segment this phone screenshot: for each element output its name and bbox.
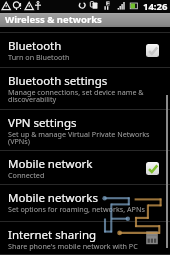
button[interactable]: Bluetooth — [0, 33, 170, 68]
staticText: Mobile networks — [8, 190, 99, 206]
button[interactable]: Mobile networks — [0, 185, 170, 222]
staticText: Bluetooth settings — [8, 73, 108, 89]
button[interactable]: VPN settings — [0, 110, 170, 151]
staticText: Internet sharing — [8, 227, 97, 243]
button[interactable]: Enabled — [146, 162, 159, 175]
staticText: VPN settings — [8, 115, 77, 131]
button[interactable]: Internet sharing — [0, 222, 170, 255]
button[interactable]: Disabled — [146, 44, 159, 57]
staticText: Bluetooth — [8, 38, 62, 54]
staticText: Mobile network — [8, 156, 93, 172]
staticText: Wireless & networks — [5, 13, 102, 26]
staticText: Manage connections, set device name & di… — [8, 87, 144, 104]
button[interactable]: Bluetooth settings — [0, 68, 170, 110]
button[interactable]: Mobile network — [0, 151, 170, 185]
staticText: Set up & manage Virtual Private Networks… — [8, 129, 150, 146]
staticText: 14:26 — [143, 0, 168, 13]
staticText: Share phone's mobile network with PC — [8, 241, 138, 251]
staticText: Set options for roaming, networks, APNs — [8, 204, 145, 214]
staticText: Turn on Bluetooth — [8, 52, 70, 62]
staticText: Connected — [8, 170, 45, 180]
